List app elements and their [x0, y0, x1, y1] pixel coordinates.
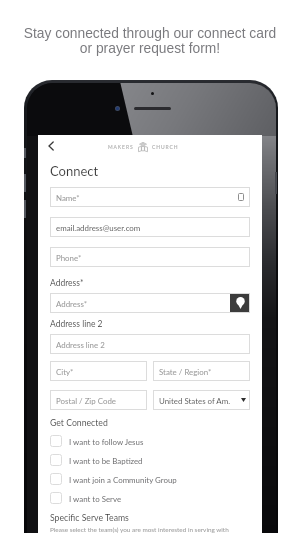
staticText: Address line 2: [50, 319, 103, 329]
staticText: CHURCH: [152, 144, 179, 150]
staticText: Get Connected: [50, 417, 108, 427]
button[interactable]: City*: [50, 361, 147, 381]
staticText: Please select the team(s) you are most i…: [50, 526, 229, 533]
button[interactable]: MAKERS: [108, 140, 179, 154]
staticText: Specific Serve Teams: [50, 512, 129, 522]
staticText: I want to be Baptized: [69, 456, 143, 465]
button[interactable]: Address*: [50, 293, 250, 313]
staticText: Address*: [50, 278, 84, 288]
staticText: Address*: [56, 299, 88, 308]
staticText: I want to follow Jesus: [69, 437, 144, 446]
button[interactable]: I want to follow Jesus: [50, 435, 250, 447]
button[interactable]: Phone*: [50, 247, 250, 267]
button[interactable]: State / Region*: [153, 361, 250, 381]
button[interactable]: email.address@user.com: [50, 217, 250, 237]
button[interactable]: Name*: [50, 187, 250, 207]
staticText: MAKERS: [108, 144, 134, 150]
button[interactable]: I want to be Baptized: [50, 454, 250, 466]
button[interactable]: I want to Serve: [50, 492, 250, 504]
staticText: Address line 2: [56, 340, 105, 349]
button[interactable]: Postal / Zip Code: [50, 390, 147, 410]
button[interactable]: Use my location: [230, 293, 250, 313]
button[interactable]: Back: [42, 137, 60, 155]
staticText: State / Region*: [159, 367, 212, 376]
staticText: Stay connected through our connect card …: [0, 26, 300, 56]
button[interactable]: Pick contact: [238, 193, 244, 201]
staticText: Connect: [50, 163, 99, 179]
staticText: United States of Am.: [159, 396, 241, 405]
staticText: City*: [56, 367, 74, 376]
button[interactable]: I want join a Community Group: [50, 473, 250, 485]
staticText: Postal / Zip Code: [56, 396, 116, 405]
staticText: email.address@user.com: [56, 223, 141, 232]
staticText: Name*: [56, 193, 80, 202]
staticText: I want to Serve: [69, 494, 122, 503]
staticText: Phone*: [56, 253, 82, 262]
staticText: I want join a Community Group: [69, 475, 177, 484]
button[interactable]: Address line 2: [50, 334, 250, 354]
button[interactable]: United States of Am.: [153, 390, 250, 410]
